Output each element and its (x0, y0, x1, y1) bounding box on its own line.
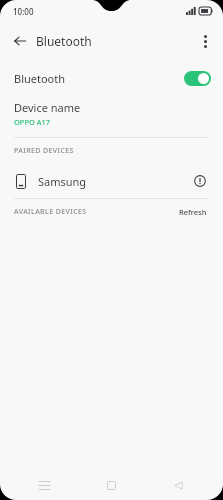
button[interactable]: Samsung (0, 164, 223, 198)
button[interactable]: Bluetooth (0, 60, 223, 96)
staticText: Bluetooth (36, 33, 92, 49)
button[interactable]: Back (7, 28, 33, 54)
button[interactable]: Recent apps (30, 471, 58, 499)
button[interactable]: Refresh (177, 205, 209, 219)
staticText: AVAILABLE DEVICES (14, 207, 87, 217)
staticText: OPPO A17 (14, 117, 51, 127)
button[interactable]: Back (164, 471, 192, 499)
staticText: Bluetooth (14, 71, 66, 86)
staticText: Samsung (38, 174, 87, 189)
staticText: Refresh (179, 207, 207, 217)
staticText: 10:00 (13, 6, 34, 17)
button[interactable]: Home (97, 471, 125, 499)
button[interactable]: More options (192, 28, 218, 54)
button[interactable]: Bluetooth on (184, 71, 211, 86)
staticText: Device name (14, 100, 81, 115)
button[interactable]: Device details (189, 170, 211, 192)
button[interactable]: Device name (0, 96, 223, 137)
staticText: PAIRED DEVICES (14, 146, 74, 156)
